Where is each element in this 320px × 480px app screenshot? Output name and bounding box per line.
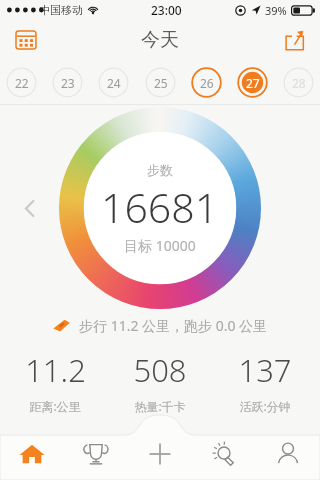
staticText: 热量:千卡 (134, 398, 186, 414)
staticText: 23:00 (151, 2, 182, 18)
staticText: 24 (107, 75, 121, 91)
staticText: 22 (15, 75, 29, 91)
staticText: 距离:公里 (29, 398, 81, 414)
staticText: 今天 (141, 28, 179, 52)
staticText: 26 (200, 75, 214, 91)
staticText: 目标 10000 (124, 236, 196, 255)
staticText: 23 (61, 75, 75, 91)
staticText: 中国移动 (39, 3, 83, 17)
button[interactable]: 22 (6, 67, 37, 98)
button[interactable]: 11.2 (5, 349, 105, 414)
staticText: 步行 11.2 公里，跑步 0.0 公里 (79, 316, 268, 335)
button[interactable]: 23 (52, 67, 83, 98)
button[interactable]: 25 (145, 67, 176, 98)
staticText: 步数 (147, 162, 173, 178)
staticText: 27 (246, 75, 260, 91)
button[interactable]: 137 (215, 349, 315, 414)
button[interactable]: Calendar (8, 22, 44, 58)
button[interactable]: 27 (237, 67, 268, 98)
button[interactable]: Profile (256, 428, 320, 480)
button[interactable]: 26 (191, 67, 222, 98)
button[interactable]: Achievements (64, 428, 128, 480)
staticText: 39% (265, 3, 287, 18)
staticText: 25 (154, 75, 168, 91)
button[interactable]: 28 (283, 67, 314, 98)
staticText: 28 (292, 75, 306, 91)
button[interactable]: Add record (128, 428, 192, 480)
button[interactable]: Share (276, 22, 312, 58)
button[interactable]: 24 (98, 67, 129, 98)
staticText: 16681 (101, 179, 219, 235)
staticText: 11.2 (25, 349, 86, 391)
staticText: 508 (133, 349, 187, 391)
button[interactable]: Home (0, 428, 64, 480)
button[interactable]: Discover (192, 428, 256, 480)
staticText: 活跃:分钟 (239, 398, 291, 414)
staticText: 137 (238, 349, 292, 391)
button[interactable]: Previous day (14, 193, 44, 223)
button[interactable]: 508 (110, 349, 210, 414)
